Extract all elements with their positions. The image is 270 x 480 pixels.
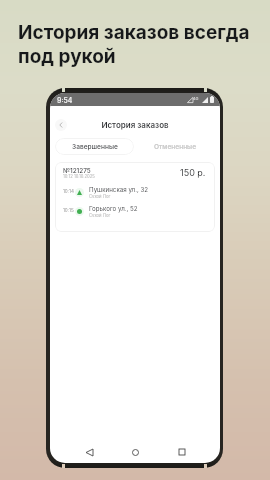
button[interactable]: Домой	[127, 444, 143, 460]
button[interactable]: №121275	[55, 162, 215, 232]
staticText: 9:54	[57, 96, 73, 104]
staticText: 4G	[193, 96, 199, 101]
staticText: Сухой Лог	[89, 213, 111, 217]
staticText: 10:12 10.10.2025	[63, 174, 95, 179]
staticText: Сухой Лог	[89, 194, 111, 198]
staticText: №121275	[63, 167, 91, 175]
staticText: 10:15	[63, 208, 83, 214]
staticText: История заказов	[101, 120, 169, 130]
button[interactable]: Последние приложения	[174, 444, 190, 460]
staticText: 10:14	[63, 189, 83, 195]
staticText: Горького ул., 52	[89, 205, 138, 213]
button[interactable]: Отмененные	[136, 138, 215, 155]
button[interactable]: Назад	[81, 444, 97, 460]
staticText: Завершенные	[72, 143, 118, 151]
button[interactable]: Завершенные	[55, 138, 134, 155]
staticText: 150 р.	[180, 167, 206, 178]
staticText: Отмененные	[154, 143, 197, 151]
button[interactable]: Назад	[55, 119, 67, 131]
staticText: Пушкинская ул., 32	[89, 186, 149, 194]
staticText: История заказов всегда под рукой	[18, 21, 250, 68]
